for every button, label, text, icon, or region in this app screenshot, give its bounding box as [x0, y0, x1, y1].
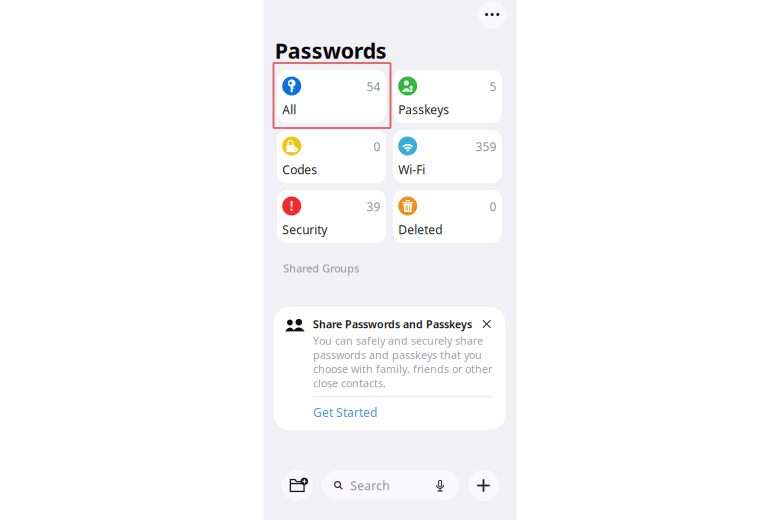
staticText: You can safely and securely share passwo…	[313, 333, 492, 390]
button[interactable]: 5	[393, 70, 502, 123]
staticText: Wi-Fi	[398, 162, 425, 177]
staticText: 5	[489, 78, 496, 94]
staticText: Share Passwords and Passkeys	[313, 317, 472, 331]
staticText: All	[282, 102, 296, 117]
button[interactable]: 39	[277, 190, 386, 243]
button[interactable]: More	[478, 0, 506, 28]
staticText: Get Started	[313, 404, 377, 420]
staticText: 0	[489, 198, 496, 214]
staticText: Passkeys	[398, 102, 449, 117]
staticText: Passwords	[275, 36, 387, 65]
staticText: Codes	[282, 162, 317, 177]
staticText: Shared Groups	[283, 261, 359, 275]
button[interactable]: Get Started	[273, 307, 337, 323]
staticText: Search	[350, 477, 389, 493]
staticText: 359	[475, 138, 496, 154]
staticText: Security	[282, 222, 327, 237]
button[interactable]: 54	[277, 70, 386, 123]
staticText: 54	[366, 78, 380, 94]
staticText: Deleted	[398, 222, 442, 237]
button[interactable]: Dismiss	[478, 315, 496, 333]
staticText: 39	[366, 198, 380, 214]
button[interactable]: Add password	[468, 470, 499, 501]
button[interactable]: 0	[393, 190, 502, 243]
button[interactable]: 359	[393, 130, 502, 183]
button[interactable]: 0	[277, 130, 386, 183]
button[interactable]: New shared group	[282, 470, 313, 501]
staticText: 0	[373, 138, 380, 154]
